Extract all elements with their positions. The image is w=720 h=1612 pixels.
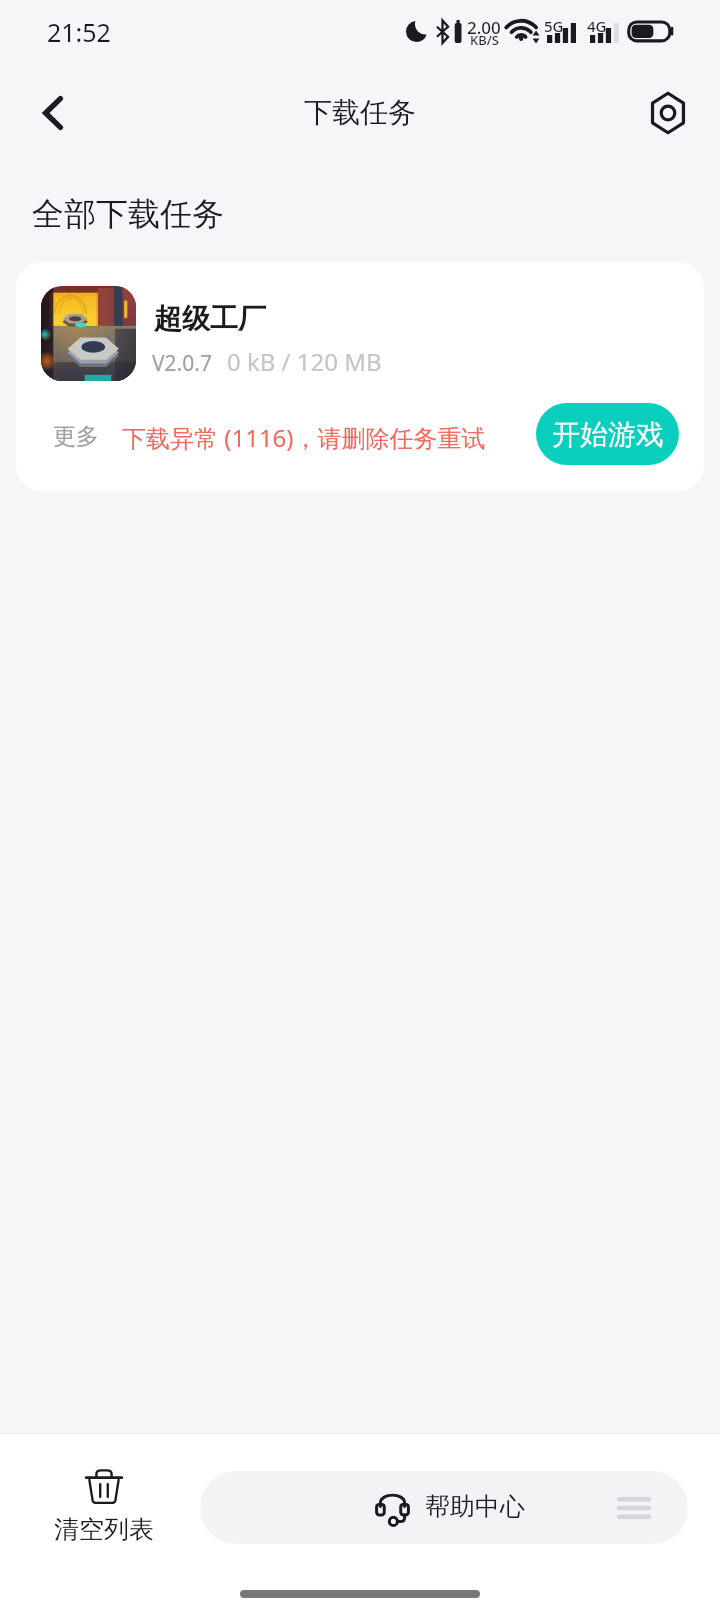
button[interactable]: 清空列表 xyxy=(31,1468,177,1545)
button[interactable]: 帮助中心 xyxy=(200,1471,688,1544)
staticText: 全部下载任务 xyxy=(32,194,224,234)
staticText: V2.0.7 xyxy=(152,349,212,378)
button[interactable]: 更多 xyxy=(53,422,99,451)
staticText: 开始游戏 xyxy=(552,417,664,452)
button[interactable]: Back xyxy=(14,73,94,153)
staticText: 0 kB / 120 MB xyxy=(227,345,382,378)
staticText: 超级工厂 xyxy=(154,301,266,336)
staticText: 下载异常 (1116)，请删除任务重试 xyxy=(122,421,486,454)
staticText: 4G xyxy=(587,16,607,36)
button[interactable]: 超级工厂 xyxy=(16,262,704,491)
staticText: 下载任务 xyxy=(304,95,416,130)
button[interactable]: Settings xyxy=(628,73,708,153)
other: More options xyxy=(619,1497,649,1519)
staticText: 21:52 xyxy=(47,15,111,49)
staticText: 帮助中心 xyxy=(425,1491,525,1522)
staticText: KB/S xyxy=(470,31,499,49)
staticText: 清空列表 xyxy=(54,1514,154,1545)
staticText: 2.00 xyxy=(467,16,501,39)
button[interactable]: 开始游戏 xyxy=(536,403,679,465)
staticText: 5G xyxy=(544,16,564,36)
